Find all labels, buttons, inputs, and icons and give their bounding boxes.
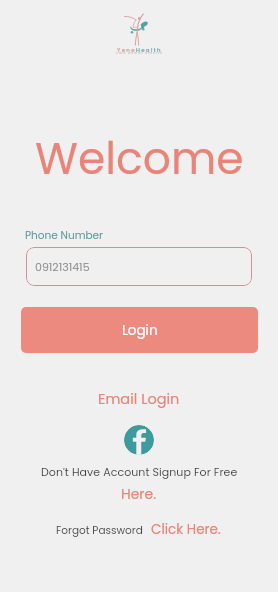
staticText: Phone Number xyxy=(25,228,103,243)
staticText: Here. xyxy=(121,484,157,504)
staticText: Welcome xyxy=(35,128,244,190)
staticText: Health xyxy=(136,46,162,54)
button[interactable]: Login xyxy=(21,307,258,353)
button[interactable]: 0912131415 xyxy=(26,247,252,286)
staticText: Click Here. xyxy=(151,520,221,539)
staticText: care women deserve xyxy=(116,51,163,55)
staticText: Yene xyxy=(117,46,136,54)
button[interactable]: Email Login xyxy=(94,387,184,411)
button[interactable]: Click Here. xyxy=(150,520,222,539)
staticText: Forgot Password xyxy=(56,523,143,538)
button[interactable]: Here. xyxy=(118,484,160,504)
staticText: Login xyxy=(122,321,158,340)
staticText: Email Login xyxy=(98,389,180,409)
staticText: 0912131415 xyxy=(35,259,90,274)
staticText: Don't Have Account Signup For Free xyxy=(41,464,238,479)
button[interactable]: Sign in with Facebook xyxy=(124,425,154,455)
